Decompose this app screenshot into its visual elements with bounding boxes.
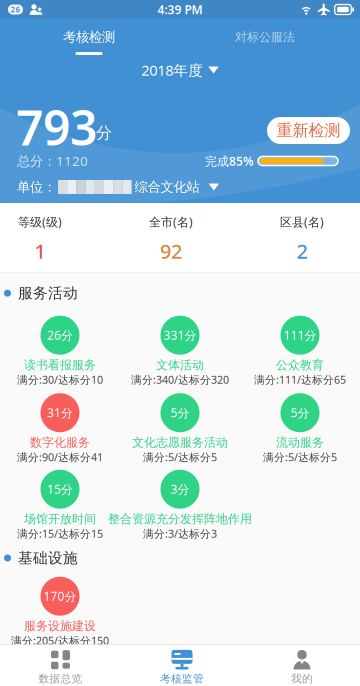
staticText: 26 <box>10 4 20 15</box>
staticText: 92 <box>160 238 182 264</box>
staticText: 111分 <box>283 327 316 343</box>
staticText: 1 <box>34 238 45 264</box>
staticText: 基础设施 <box>18 549 78 567</box>
staticText: 分 <box>96 123 112 143</box>
staticText: 793 <box>16 95 97 159</box>
staticText: 31分 <box>47 405 73 421</box>
button[interactable]: 重新检测 <box>267 117 350 144</box>
staticText: 15分 <box>47 481 73 497</box>
staticText: 文体活动 <box>156 358 204 372</box>
button[interactable]: 331分 <box>120 316 240 392</box>
staticText: 满分:111/达标分65 <box>254 372 346 387</box>
staticText: 整合资源充分发挥阵地作用 <box>108 512 252 526</box>
staticText: 重新检测 <box>276 121 340 140</box>
button[interactable]: 单位： <box>17 178 219 196</box>
button[interactable]: 对标公服法 <box>180 26 350 56</box>
staticText: 满分:5/达标分5 <box>143 450 217 464</box>
staticText: 服务活动 <box>18 284 78 302</box>
button[interactable]: 5分 <box>240 393 360 469</box>
staticText: 26分 <box>47 327 73 343</box>
staticText: 读书看报服务 <box>24 358 96 372</box>
staticText: 满分:3/达标分3 <box>143 526 217 541</box>
staticText: 完成85% <box>205 153 254 169</box>
button[interactable]: 31分 <box>0 393 120 469</box>
button[interactable]: 15分 <box>0 470 120 546</box>
button[interactable]: 我的 <box>243 648 360 686</box>
staticText: 全市(名) <box>149 214 193 230</box>
button[interactable]: 2018年度 <box>141 58 219 82</box>
button[interactable]: 26分 <box>0 316 120 392</box>
button[interactable]: 数据总览 <box>1 648 119 686</box>
staticText: 综合文化站 <box>135 179 200 195</box>
button[interactable]: 考核监管 <box>123 648 241 686</box>
staticText: 总分：1120 <box>17 152 88 170</box>
staticText: 单位： <box>17 179 56 195</box>
staticText: 4:39 PM <box>157 1 202 17</box>
staticText: 170分 <box>43 588 76 604</box>
staticText: 考核检测 <box>63 29 115 45</box>
staticText: 公众教育 <box>276 358 324 372</box>
staticText: 我的 <box>291 672 313 685</box>
staticText: 服务设施建设 <box>24 619 96 633</box>
staticText: 满分:340/达标分320 <box>131 372 229 387</box>
button[interactable]: 5分 <box>120 393 240 469</box>
staticText: 满分:205/达标分150 <box>11 633 109 648</box>
staticText: 文化志愿服务活动 <box>132 435 228 450</box>
staticText: 等级(级) <box>18 214 62 230</box>
staticText: 5分 <box>170 405 189 421</box>
staticText: 5分 <box>290 405 309 421</box>
staticText: 数字化服务 <box>30 435 90 450</box>
button[interactable]: 考核检测 <box>4 26 174 56</box>
staticText: 满分:15/达标分15 <box>17 526 103 541</box>
staticText: 对标公服法 <box>235 30 295 44</box>
staticText: 满分:90/达标分41 <box>17 450 103 464</box>
staticText: 满分:5/达标分5 <box>263 450 337 464</box>
button[interactable]: 111分 <box>240 316 360 392</box>
staticText: 考核监管 <box>160 672 204 685</box>
button[interactable]: 3分 <box>120 470 240 546</box>
staticText: 3分 <box>170 481 189 497</box>
staticText: 数据总览 <box>38 672 82 685</box>
staticText: 2018年度 <box>141 60 203 80</box>
staticText: 区县(名) <box>280 214 324 230</box>
button[interactable]: 170分 <box>0 577 120 653</box>
staticText: 流动服务 <box>276 435 324 450</box>
staticText: 满分:30/达标分10 <box>17 372 103 387</box>
staticText: 场馆开放时间 <box>24 512 96 526</box>
staticText: 331分 <box>163 327 196 343</box>
staticText: 2 <box>296 238 307 264</box>
